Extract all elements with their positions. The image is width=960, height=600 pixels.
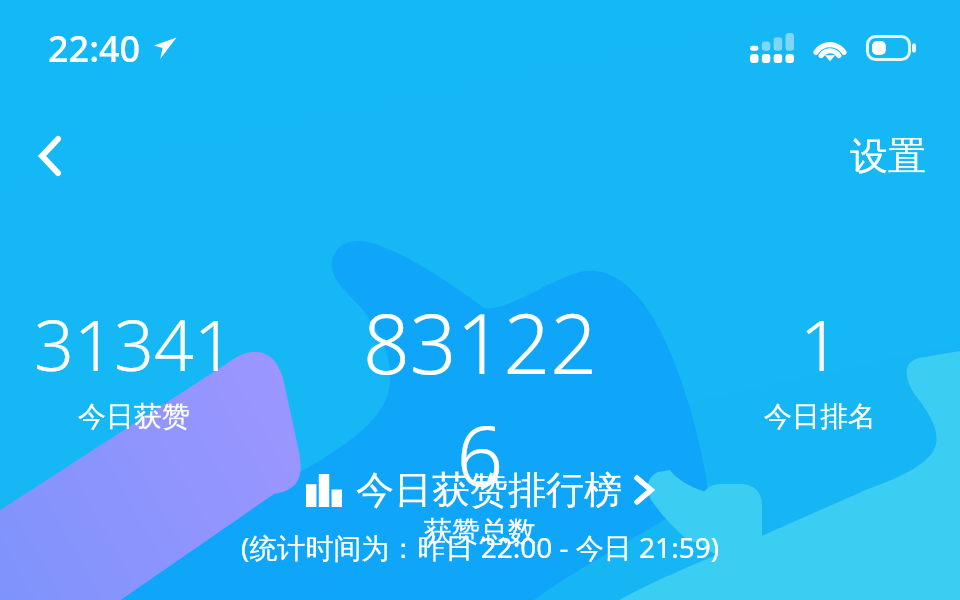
staticText: 22:40 — [48, 24, 141, 73]
staticText: 设置 — [850, 132, 926, 180]
button[interactable]: Back — [22, 128, 78, 184]
button[interactable]: 设置 — [850, 132, 926, 180]
staticText: 831226 — [360, 286, 600, 510]
staticText: 31341 — [34, 296, 234, 391]
staticText: 1 — [800, 296, 840, 391]
staticText: 今日排名 — [764, 399, 876, 434]
staticText: 今日获赞 — [78, 399, 190, 434]
staticText: 获赞总数 — [424, 514, 536, 549]
button[interactable]: 今日获赞排行榜 — [300, 464, 660, 516]
staticText: (统计时间为：昨日 22:00 - 今日 21:59) — [241, 528, 720, 566]
staticText: 今日获赞排行榜 — [356, 466, 622, 514]
